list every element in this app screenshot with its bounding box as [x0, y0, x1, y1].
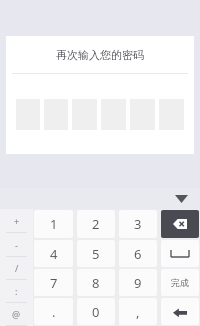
button[interactable]: 1 — [34, 210, 73, 238]
staticText: @ — [12, 308, 21, 320]
button[interactable]: 4 — [34, 240, 73, 267]
button[interactable]: + — [0, 209, 33, 232]
button[interactable]: 0 — [77, 298, 115, 325]
staticText: , — [136, 303, 140, 321]
button[interactable]: : — [0, 280, 33, 302]
button[interactable]: Hide keyboard — [170, 188, 192, 209]
staticText: 9 — [134, 274, 142, 292]
button[interactable]: @ — [0, 303, 33, 325]
button[interactable]: 2 — [77, 210, 115, 238]
staticText: 7 — [50, 274, 58, 292]
staticText: 再次输入您的密码 — [56, 48, 144, 62]
staticText: . — [52, 303, 56, 321]
staticText: 完成 — [171, 277, 189, 288]
button[interactable]: 9 — [119, 269, 157, 296]
staticText: 3 — [134, 215, 142, 233]
button[interactable]: 3 — [119, 210, 157, 238]
staticText: : — [15, 285, 18, 297]
staticText: 0 — [92, 303, 100, 321]
button[interactable]: / — [0, 257, 33, 279]
staticText: - — [15, 239, 18, 251]
staticText: 5 — [92, 245, 100, 263]
staticText: 2 — [92, 215, 100, 233]
staticText: / — [15, 262, 19, 274]
button[interactable]: 7 — [34, 269, 73, 296]
button[interactable]: Enter — [161, 298, 199, 325]
button[interactable]: . — [34, 298, 73, 325]
button[interactable]: , — [119, 298, 157, 325]
staticText: 6 — [134, 245, 142, 263]
button[interactable]: Backspace — [161, 210, 199, 238]
staticText: 8 — [92, 274, 100, 292]
button[interactable]: 6 — [119, 240, 157, 267]
button[interactable]: 8 — [77, 269, 115, 296]
staticText: + — [14, 215, 20, 227]
button[interactable]: Space — [161, 240, 199, 267]
staticText: 4 — [50, 245, 58, 263]
button[interactable]: - — [0, 233, 33, 256]
staticText: 1 — [50, 215, 58, 233]
button[interactable]: 5 — [77, 240, 115, 267]
button[interactable]: 完成 — [161, 269, 199, 296]
